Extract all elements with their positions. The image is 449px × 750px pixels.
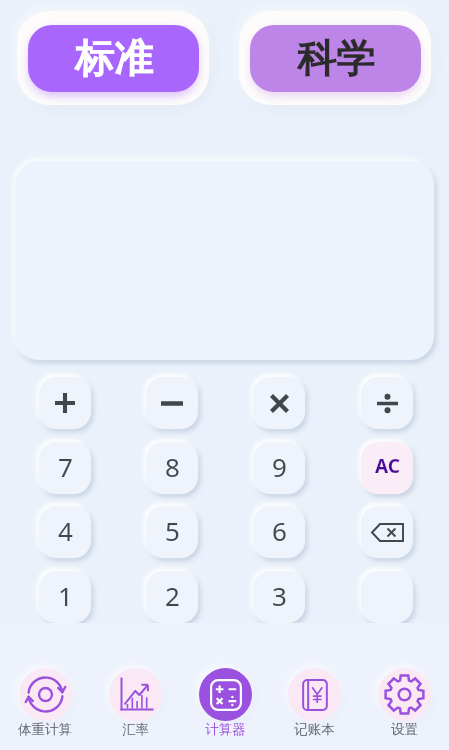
staticText: AC (375, 453, 400, 479)
staticText: 1 (58, 578, 73, 613)
button[interactable]: 4 (39, 506, 91, 558)
button[interactable]: Divide (361, 377, 413, 429)
button[interactable]: 汇率 (98, 668, 172, 738)
button[interactable]: Plus (39, 377, 91, 429)
button[interactable]: 科学 (239, 11, 431, 105)
staticText: 8 (165, 449, 180, 484)
staticText: 5 (165, 513, 180, 548)
button[interactable]: Multiply (253, 377, 305, 429)
button[interactable]: 标准 (17, 11, 209, 105)
staticText: 2 (165, 578, 180, 613)
button[interactable]: 9 (253, 442, 305, 494)
staticText: 标准 (75, 34, 153, 83)
button[interactable]: 体重计算 (8, 668, 82, 738)
button[interactable]: 8 (146, 442, 198, 494)
button[interactable]: 6 (253, 506, 305, 558)
button[interactable]: 记账本 (277, 668, 351, 738)
staticText: 4 (58, 513, 73, 548)
button[interactable]: Backspace (361, 506, 413, 558)
button[interactable]: 1 (39, 571, 91, 623)
staticText: 科学 (297, 34, 375, 83)
button[interactable] (361, 571, 413, 623)
staticText: 设置 (391, 721, 418, 738)
staticText: 3 (272, 578, 287, 613)
staticText: 7 (58, 449, 73, 484)
button[interactable]: AC (361, 442, 413, 494)
button[interactable]: 计算器 (188, 668, 262, 738)
button[interactable]: 设置 (367, 668, 441, 738)
staticText: 9 (272, 449, 287, 484)
button[interactable]: 2 (146, 571, 198, 623)
button[interactable]: 5 (146, 506, 198, 558)
staticText: 汇率 (122, 721, 149, 738)
button[interactable]: 7 (39, 442, 91, 494)
staticText: 计算器 (205, 721, 246, 738)
button[interactable]: 3 (253, 571, 305, 623)
staticText: 6 (272, 513, 287, 548)
staticText: 记账本 (294, 721, 335, 738)
button[interactable]: Minus (146, 377, 198, 429)
staticText: 体重计算 (18, 721, 72, 738)
